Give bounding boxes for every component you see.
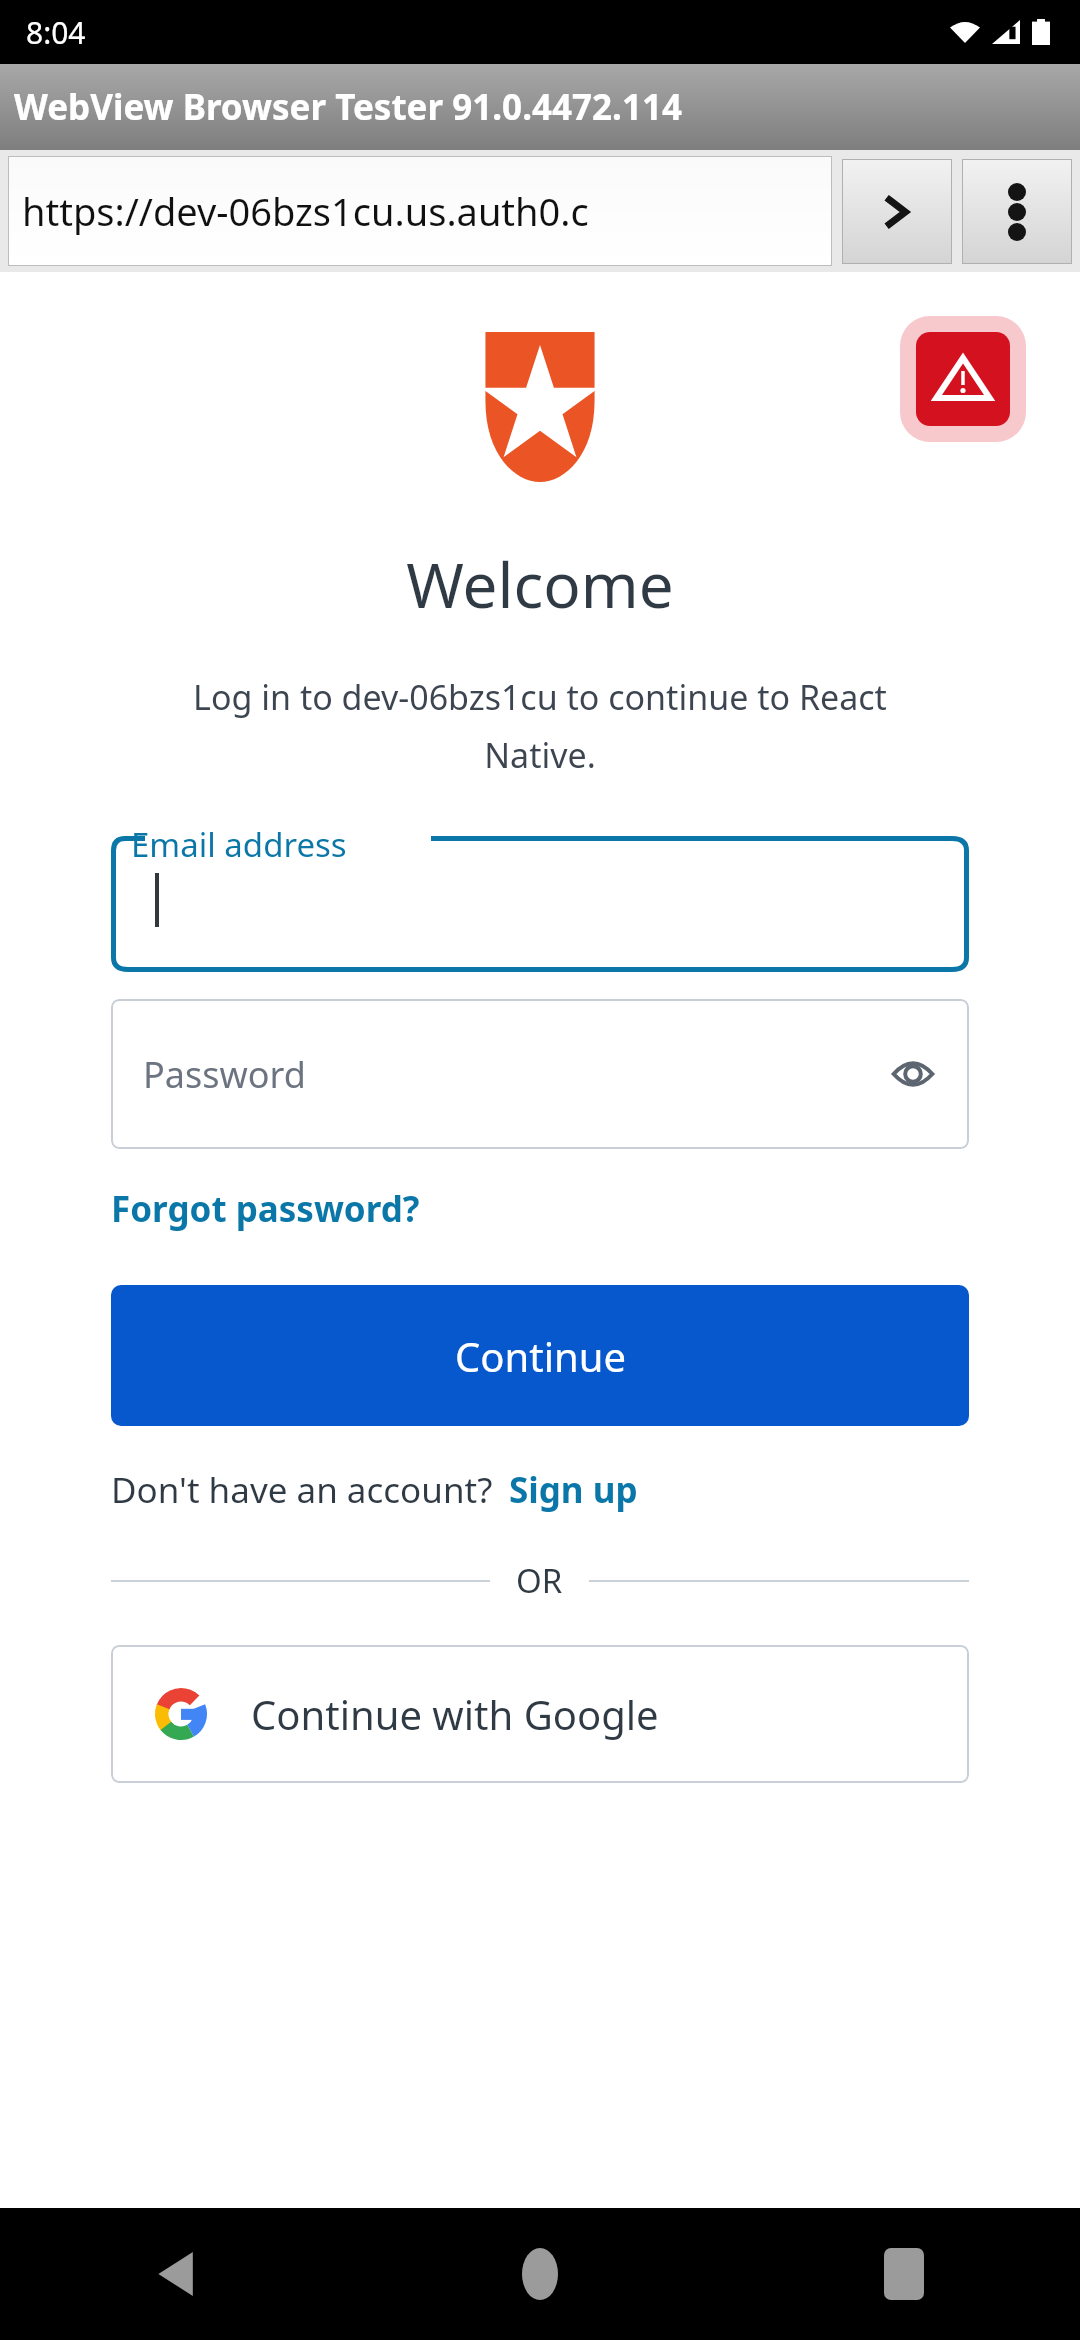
staticText: Welcome: [406, 542, 674, 626]
button[interactable]: Recent apps: [858, 2228, 950, 2320]
button[interactable]: Show password: [881, 1042, 945, 1106]
button[interactable]: https://dev-06bzs1cu.us.auth0.c: [8, 156, 832, 266]
staticText: Log in to dev-06bzs1cu to continue to Re…: [40, 674, 1040, 778]
staticText: WebView Browser Tester 91.0.4472.114: [14, 83, 682, 131]
button[interactable]: Back: [130, 2228, 222, 2320]
staticText: Email address: [131, 822, 347, 867]
button[interactable]: Continue: [111, 1285, 969, 1426]
button[interactable]: Warning: [900, 316, 1026, 442]
staticText: Sign up: [509, 1466, 638, 1514]
staticText: OR: [516, 1558, 563, 1603]
staticText: Don't have an account?: [111, 1466, 493, 1514]
button[interactable]: Go: [842, 159, 952, 264]
button[interactable]: More options: [962, 159, 1072, 264]
button[interactable]: Forgot password?: [111, 1185, 420, 1233]
staticText: Continue: [455, 1329, 626, 1383]
button[interactable]: Password: [111, 999, 969, 1149]
staticText: https://dev-06bzs1cu.us.auth0.c: [22, 185, 589, 237]
staticText: Forgot password?: [111, 1185, 420, 1233]
button[interactable]: Continue with Google: [111, 1645, 969, 1783]
staticText: Continue with Google: [251, 1687, 659, 1741]
button[interactable]: Home: [494, 2228, 586, 2320]
staticText: Password: [143, 1050, 306, 1099]
button[interactable]: Email address: [111, 822, 969, 972]
staticText: 8:04: [26, 12, 86, 53]
button[interactable]: Sign up: [509, 1466, 638, 1514]
